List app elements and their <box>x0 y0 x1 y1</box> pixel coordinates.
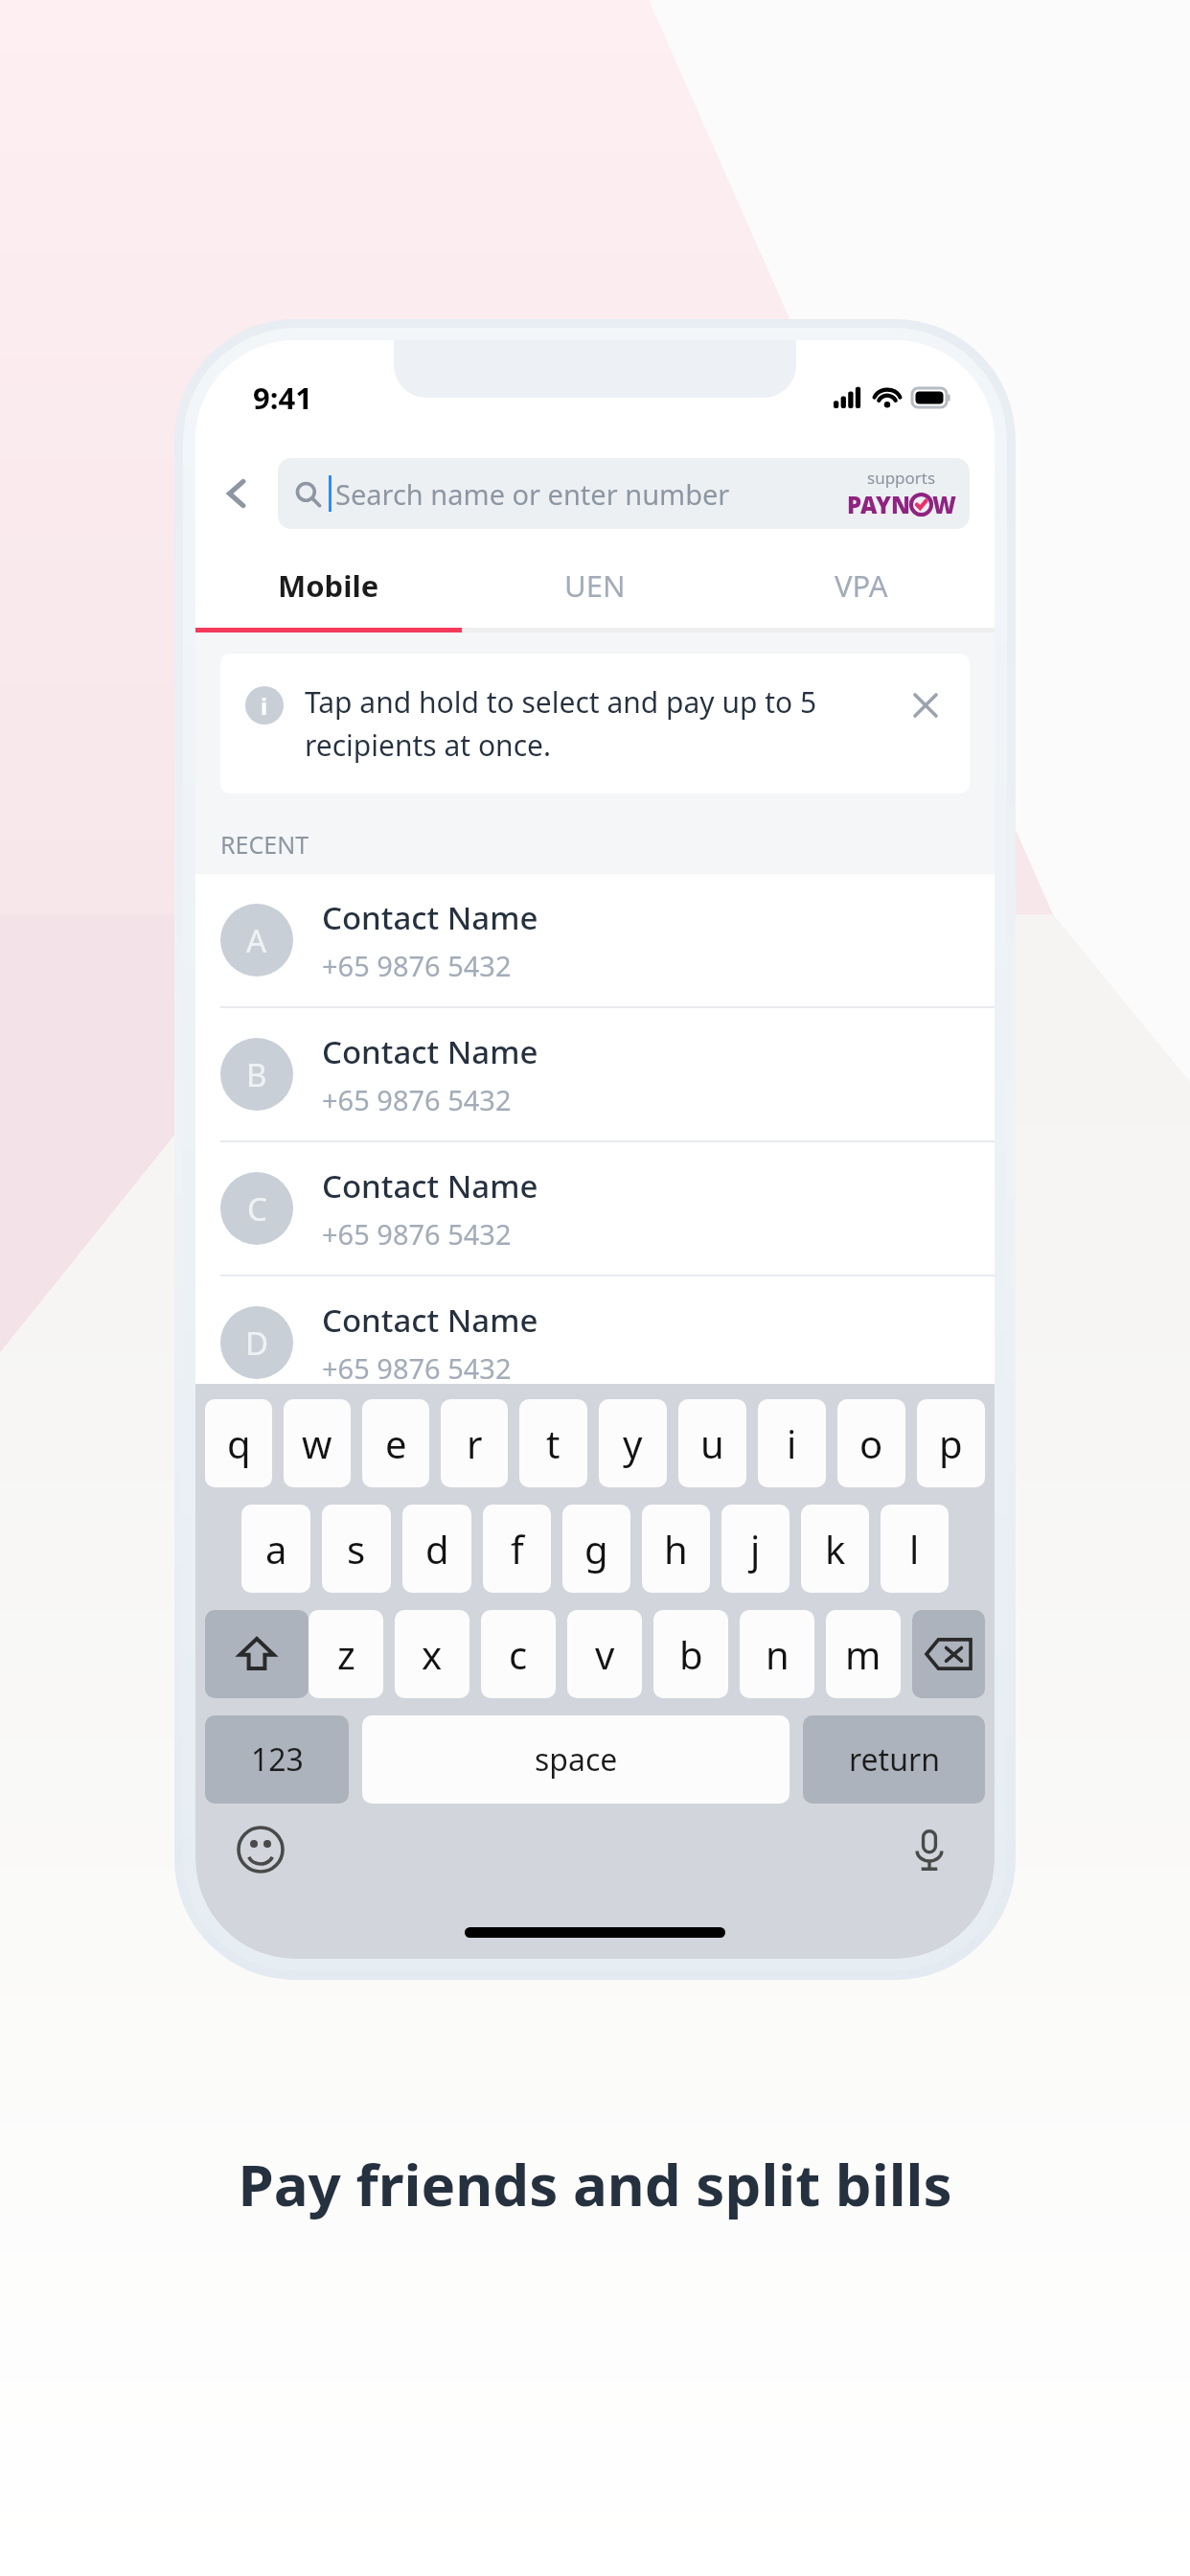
button[interactable]: l <box>881 1505 949 1593</box>
staticText: i <box>787 1417 797 1469</box>
button[interactable]: Search name or enter number <box>278 458 970 529</box>
button[interactable]: B <box>195 1008 995 1142</box>
staticText: Contact Name <box>322 1299 538 1342</box>
button[interactable]: w <box>284 1399 351 1487</box>
button[interactable]: Back <box>195 444 278 543</box>
button[interactable]: g <box>562 1505 630 1593</box>
staticText: +65 9876 5432 <box>322 1483 512 1521</box>
button[interactable]: e <box>362 1399 429 1487</box>
staticText: Contact Name <box>322 1164 538 1207</box>
staticText: D <box>245 1322 269 1365</box>
button[interactable]: n <box>740 1610 814 1698</box>
staticText: Mobile <box>278 565 379 606</box>
button[interactable]: m <box>826 1610 901 1698</box>
button[interactable]: i <box>758 1399 826 1487</box>
button[interactable]: Dictate <box>903 1823 956 1876</box>
button[interactable]: t <box>519 1399 587 1487</box>
staticText: UEN <box>564 565 626 606</box>
button[interactable]: k <box>801 1505 869 1593</box>
button[interactable]: C <box>195 1142 995 1276</box>
staticText: o <box>859 1417 883 1469</box>
staticText: E <box>248 1456 266 1499</box>
staticText: Contact Name <box>322 1433 538 1476</box>
button[interactable]: p <box>917 1399 985 1487</box>
staticText: k <box>825 1523 846 1575</box>
staticText: Tap and hold to select and pay up to 5 r… <box>305 682 893 765</box>
button[interactable]: s <box>322 1505 391 1593</box>
button[interactable]: q <box>205 1399 272 1487</box>
button[interactable]: Backspace <box>912 1610 985 1698</box>
staticText: p <box>939 1417 963 1469</box>
staticText: supports <box>867 467 936 489</box>
button[interactable]: E <box>195 1411 995 1545</box>
button[interactable]: return <box>803 1715 985 1804</box>
button[interactable]: space <box>362 1715 790 1804</box>
staticText: +65 9876 5432 <box>322 947 512 984</box>
button[interactable]: z <box>309 1610 383 1698</box>
staticText: w <box>302 1417 332 1469</box>
staticText: W <box>932 489 956 520</box>
staticText: c <box>509 1628 528 1680</box>
staticText: v <box>595 1628 615 1680</box>
button[interactable]: v <box>567 1610 642 1698</box>
button[interactable]: D <box>195 1276 995 1411</box>
staticText: j <box>750 1523 761 1575</box>
staticText: Contact Name <box>322 1030 538 1073</box>
button[interactable]: A <box>195 874 995 1008</box>
staticText: u <box>700 1417 724 1469</box>
button[interactable]: r <box>441 1399 508 1487</box>
button[interactable]: a <box>241 1505 310 1593</box>
staticText: z <box>337 1628 355 1680</box>
button[interactable]: Dismiss <box>906 686 945 724</box>
staticText: RECENT <box>220 828 309 861</box>
staticText: +65 9876 5432 <box>322 1081 512 1118</box>
staticText: x <box>422 1628 443 1680</box>
button[interactable]: i <box>245 682 945 765</box>
staticText: e <box>385 1417 407 1469</box>
staticText: g <box>584 1523 608 1575</box>
button[interactable]: Mobile <box>195 543 462 628</box>
staticText: d <box>425 1523 449 1575</box>
button[interactable]: 123 <box>205 1715 349 1804</box>
button[interactable]: o <box>837 1399 905 1487</box>
staticText: +65 9876 5432 <box>322 1215 512 1253</box>
button[interactable]: y <box>599 1399 667 1487</box>
staticText: y <box>623 1417 643 1469</box>
button[interactable]: UEN <box>462 543 728 628</box>
staticText: l <box>909 1523 920 1575</box>
staticText: A <box>246 919 267 962</box>
staticText: C <box>247 1187 267 1230</box>
button[interactable]: c <box>481 1610 556 1698</box>
button[interactable]: Emoji <box>234 1823 287 1876</box>
button[interactable]: x <box>395 1610 469 1698</box>
staticText: PAYN <box>847 489 910 520</box>
button[interactable]: VPA <box>728 543 995 628</box>
button[interactable]: b <box>653 1610 728 1698</box>
staticText: VPA <box>835 565 888 606</box>
staticText: i <box>261 690 268 722</box>
staticText: a <box>265 1523 287 1575</box>
button[interactable]: u <box>678 1399 746 1487</box>
staticText: Pay friends and split bills <box>238 2145 952 2223</box>
staticText: q <box>227 1417 251 1469</box>
staticText: s <box>347 1523 366 1575</box>
staticText: space <box>535 1738 618 1781</box>
staticText: 9:41 <box>253 378 312 418</box>
staticText: B <box>246 1053 267 1096</box>
staticText: 123 <box>251 1738 304 1781</box>
staticText: f <box>511 1523 524 1575</box>
staticText: b <box>679 1628 703 1680</box>
staticText: t <box>546 1417 561 1469</box>
button[interactable]: d <box>402 1505 471 1593</box>
staticText: m <box>845 1628 881 1680</box>
staticText: h <box>664 1523 688 1575</box>
staticText: +65 9876 5432 <box>322 1349 512 1387</box>
button[interactable]: Shift <box>205 1610 309 1698</box>
staticText: Search name or enter number <box>335 475 730 513</box>
button[interactable]: f <box>483 1505 551 1593</box>
staticText: n <box>766 1628 790 1680</box>
button[interactable]: j <box>721 1505 790 1593</box>
staticText: Contact Name <box>322 896 538 939</box>
button[interactable]: h <box>642 1505 710 1593</box>
staticText: return <box>849 1738 940 1781</box>
